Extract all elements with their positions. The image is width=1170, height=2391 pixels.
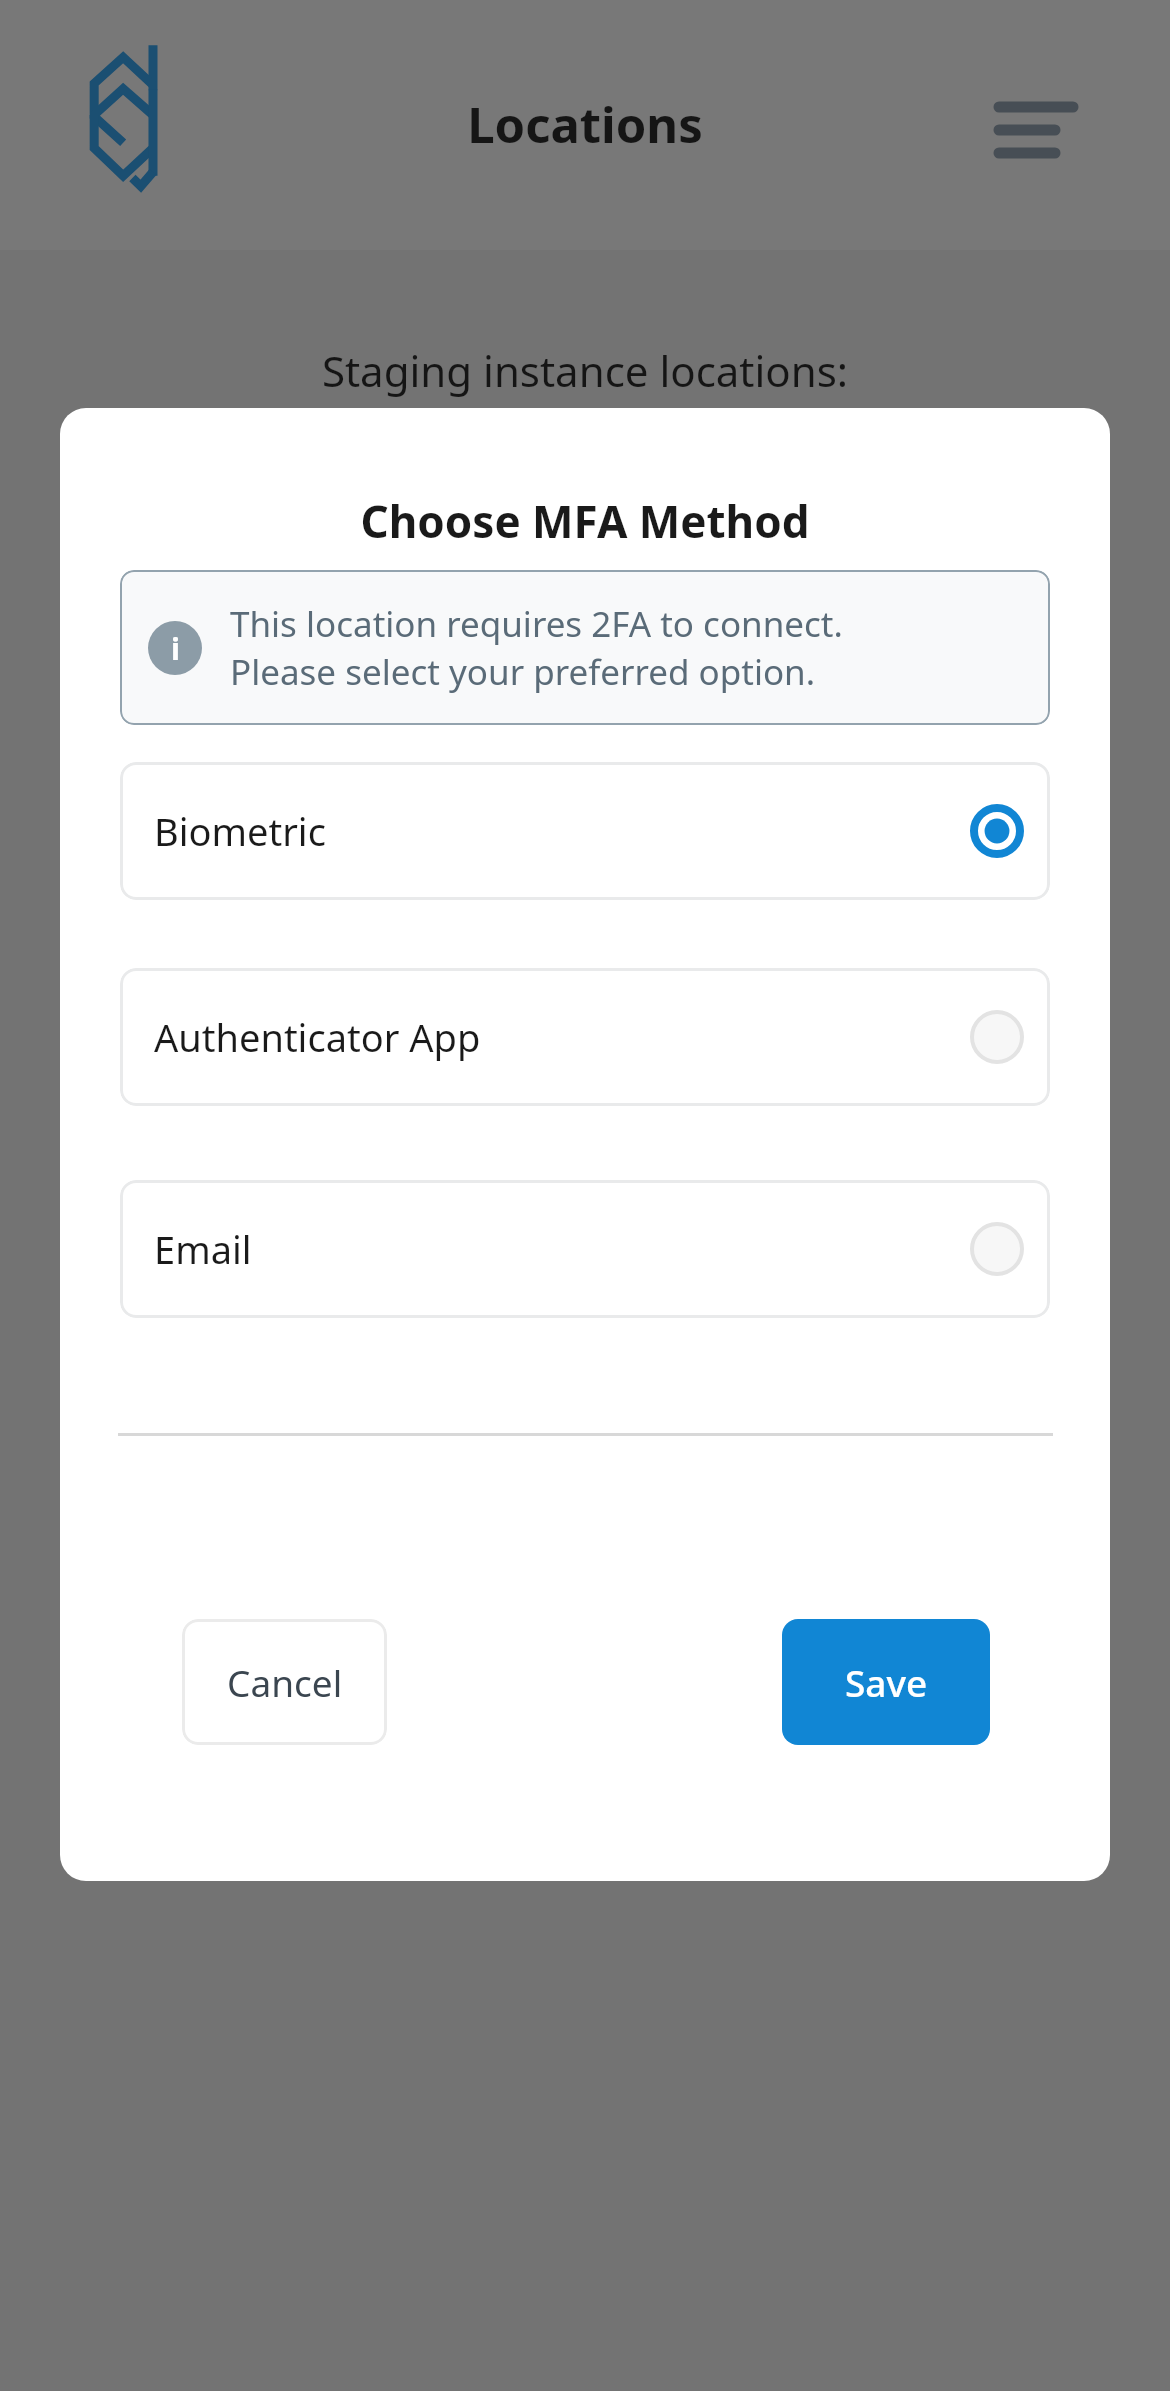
staticText: Locations xyxy=(467,91,703,158)
button[interactable]: Save xyxy=(782,1619,990,1745)
staticText: Email xyxy=(154,1223,970,1275)
staticText: Staging instance locations: xyxy=(0,342,1170,399)
button[interactable]: Email xyxy=(120,1180,1050,1318)
staticText: Please select your preferred option. xyxy=(230,648,816,696)
button[interactable]: Cancel xyxy=(182,1619,387,1745)
button[interactable]: Menu xyxy=(985,85,1090,165)
staticText: Choose MFA Method xyxy=(60,491,1110,551)
button[interactable]: Biometric xyxy=(120,762,1050,900)
staticText: Authenticator App xyxy=(154,1011,970,1063)
staticText: i xyxy=(171,628,180,669)
button[interactable]: Authenticator App xyxy=(120,968,1050,1106)
staticText: This location requires 2FA to connect. xyxy=(230,600,843,648)
staticText: Save xyxy=(845,1657,928,1707)
staticText: Biometric xyxy=(154,805,970,857)
staticText: Cancel xyxy=(227,1657,343,1707)
